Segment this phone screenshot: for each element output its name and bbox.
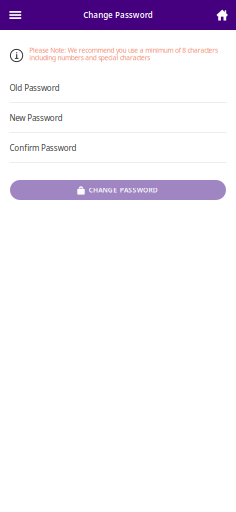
staticText: CHANGE PASSWORD bbox=[89, 186, 158, 194]
staticText: including numbers and special characters bbox=[29, 53, 150, 62]
staticText: New Password bbox=[9, 113, 63, 123]
button[interactable]: Old Password bbox=[0, 73, 236, 103]
staticText: Change Password bbox=[83, 10, 153, 20]
button[interactable]: Confirm Password bbox=[0, 133, 236, 163]
staticText: Please Note: We recommend you use a mini… bbox=[29, 46, 218, 55]
button[interactable]: Menu bbox=[4, 0, 26, 30]
button[interactable]: New Password bbox=[0, 103, 236, 133]
staticText: Old Password bbox=[9, 83, 60, 93]
staticText: Confirm Password bbox=[9, 143, 76, 153]
button[interactable]: Home bbox=[211, 0, 233, 30]
button[interactable]: CHANGE PASSWORD bbox=[10, 180, 226, 200]
